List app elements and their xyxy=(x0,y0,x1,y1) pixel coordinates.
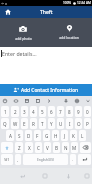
button[interactable]: L xyxy=(79,130,86,141)
button[interactable]: Settings xyxy=(73,97,80,104)
staticText: O xyxy=(77,121,81,127)
staticText: add photo xyxy=(15,36,32,41)
button[interactable]: M xyxy=(71,142,78,153)
button[interactable]: G xyxy=(43,130,50,141)
button[interactable]: Home xyxy=(3,7,13,17)
staticText: V xyxy=(46,145,49,151)
staticText: J xyxy=(64,133,66,139)
button[interactable]: I xyxy=(66,118,73,129)
staticText: E xyxy=(23,121,26,127)
staticText: 2 xyxy=(14,109,17,115)
staticText: 0 xyxy=(86,109,89,115)
button[interactable]: Y xyxy=(48,118,55,129)
staticText: !#1 xyxy=(4,157,10,162)
button[interactable]: Hide keyboard xyxy=(63,171,73,181)
staticText: 12:34 AM xyxy=(77,1,91,5)
button[interactable]: 3 xyxy=(21,106,28,117)
staticText: P xyxy=(86,121,89,127)
button[interactable]: !#1 xyxy=(1,154,13,165)
staticText: R xyxy=(32,121,35,127)
button[interactable]: E xyxy=(21,118,28,129)
button[interactable]: J xyxy=(61,130,68,141)
staticText: N xyxy=(64,145,68,151)
staticText: F xyxy=(36,133,39,139)
staticText: English(US) xyxy=(37,158,54,162)
button[interactable]: H xyxy=(52,130,59,141)
button[interactable]: More tools xyxy=(45,97,52,104)
button[interactable]: S xyxy=(16,130,23,141)
button[interactable]: Sticker xyxy=(23,97,30,104)
button[interactable]: Q xyxy=(1,118,9,129)
button[interactable]: 4 xyxy=(30,106,37,117)
staticText: S xyxy=(18,133,21,139)
button[interactable]: N xyxy=(62,142,69,153)
button[interactable]: Enter details... xyxy=(0,47,92,84)
staticText: X xyxy=(28,145,31,151)
staticText: Enter details... xyxy=(2,50,37,57)
staticText: U xyxy=(59,121,63,127)
button[interactable]: Home xyxy=(40,171,50,181)
staticText: G xyxy=(45,133,49,139)
button[interactable]: English(US) xyxy=(23,154,68,165)
button[interactable]: Emoji xyxy=(1,97,8,104)
button[interactable]: C xyxy=(35,142,42,153)
staticText: 3 xyxy=(23,109,26,115)
staticText: 6 xyxy=(50,109,53,115)
staticText: 8 xyxy=(68,109,71,115)
staticText: Theft xyxy=(40,9,53,16)
button[interactable]: 8 xyxy=(66,106,73,117)
button[interactable]: add photo xyxy=(0,18,46,47)
button[interactable]: add location xyxy=(46,18,92,47)
button[interactable]: U xyxy=(57,118,64,129)
staticText: W xyxy=(13,121,18,127)
button[interactable]: Voice input xyxy=(62,97,69,104)
button[interactable]: W xyxy=(11,118,19,129)
button[interactable]: GIF xyxy=(12,97,19,104)
button[interactable]: 2 xyxy=(11,106,19,117)
button[interactable]: P xyxy=(84,118,91,129)
button[interactable]: B xyxy=(53,142,60,153)
staticText: 100% xyxy=(63,1,72,5)
staticText: L xyxy=(81,133,84,139)
button[interactable]: Recents xyxy=(82,171,92,181)
staticText: 7 xyxy=(59,109,62,115)
button[interactable]: R xyxy=(30,118,37,129)
staticText: 1 xyxy=(4,109,7,115)
staticText: I xyxy=(69,121,71,127)
staticText: K xyxy=(72,133,75,139)
button[interactable]: T xyxy=(39,118,46,129)
staticText: D xyxy=(27,133,31,139)
staticText: 4 xyxy=(32,109,35,115)
button[interactable]: A xyxy=(6,130,14,141)
button[interactable]: Z xyxy=(15,142,23,153)
button[interactable]: 7 xyxy=(57,106,64,117)
button[interactable]: , xyxy=(15,154,21,165)
button[interactable]: Add Contact Information xyxy=(0,84,92,96)
staticText: 5 xyxy=(41,109,44,115)
button[interactable]: F xyxy=(34,130,41,141)
button[interactable]: 1 xyxy=(1,106,9,117)
staticText: T xyxy=(41,121,44,127)
staticText: B xyxy=(55,145,58,151)
button[interactable]: Collapse xyxy=(84,97,91,104)
button[interactable]: 6 xyxy=(48,106,55,117)
button[interactable]: Backspace xyxy=(80,142,91,153)
button[interactable]: X xyxy=(25,142,33,153)
button[interactable]: K xyxy=(70,130,77,141)
button[interactable]: V xyxy=(44,142,51,153)
button[interactable]: D xyxy=(25,130,32,141)
staticText: , xyxy=(17,157,19,163)
button[interactable]: 0 xyxy=(84,106,91,117)
button[interactable]: 5 xyxy=(39,106,46,117)
button[interactable]: 9 xyxy=(75,106,82,117)
staticText: M xyxy=(72,145,77,151)
button[interactable]: Enter xyxy=(78,154,91,165)
button[interactable]: Back xyxy=(17,171,27,181)
staticText: Add Contact Information xyxy=(21,87,79,94)
staticText: add location xyxy=(59,35,79,40)
button[interactable]: Shift xyxy=(1,142,13,153)
button[interactable]: Clipboard xyxy=(34,97,41,104)
button[interactable]: . xyxy=(70,154,76,165)
staticText: Z xyxy=(18,145,21,151)
button[interactable]: O xyxy=(75,118,82,129)
